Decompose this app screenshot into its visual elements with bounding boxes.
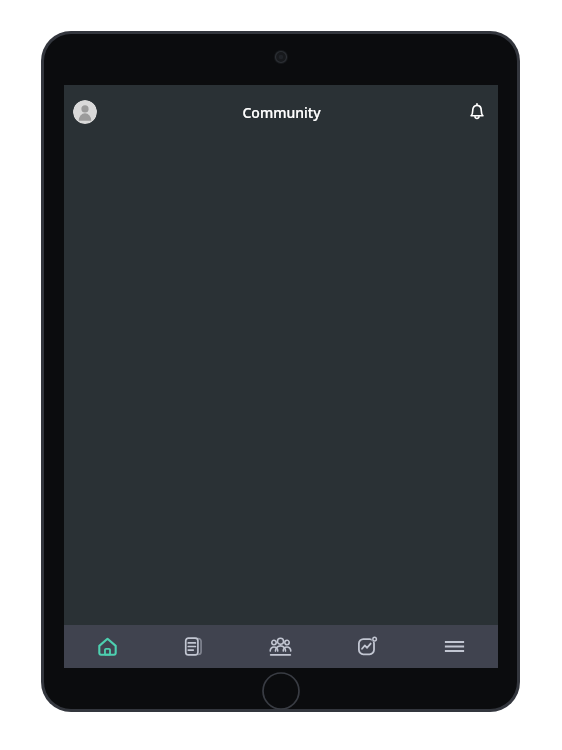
button[interactable]: Activity bbox=[324, 625, 411, 668]
staticText: Community bbox=[242, 103, 321, 122]
button[interactable]: Profile bbox=[73, 100, 97, 124]
button[interactable]: Feed bbox=[150, 625, 237, 668]
button[interactable]: Groups bbox=[237, 625, 324, 668]
button[interactable]: Menu bbox=[411, 625, 498, 668]
button[interactable]: Home bbox=[64, 625, 150, 668]
button[interactable]: Notifications bbox=[461, 96, 493, 128]
